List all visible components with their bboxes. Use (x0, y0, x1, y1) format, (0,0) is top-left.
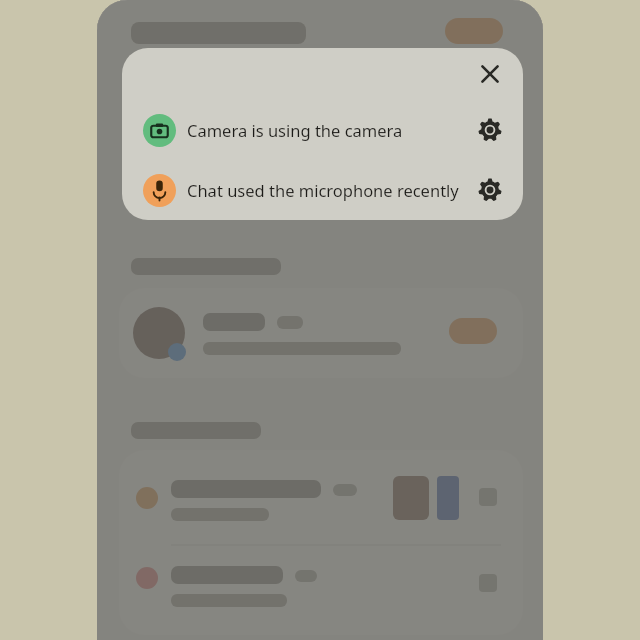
button[interactable]: Camera is using the camera (122, 100, 523, 160)
button[interactable]: Camera permission settings (466, 106, 514, 154)
button[interactable]: Microphone permission settings (466, 166, 514, 214)
staticText: Camera is using the camera (187, 119, 466, 141)
button[interactable]: Chat used the microphone recently (122, 160, 523, 220)
staticText: Chat used the microphone recently (187, 179, 466, 201)
button[interactable]: Close (467, 51, 513, 97)
